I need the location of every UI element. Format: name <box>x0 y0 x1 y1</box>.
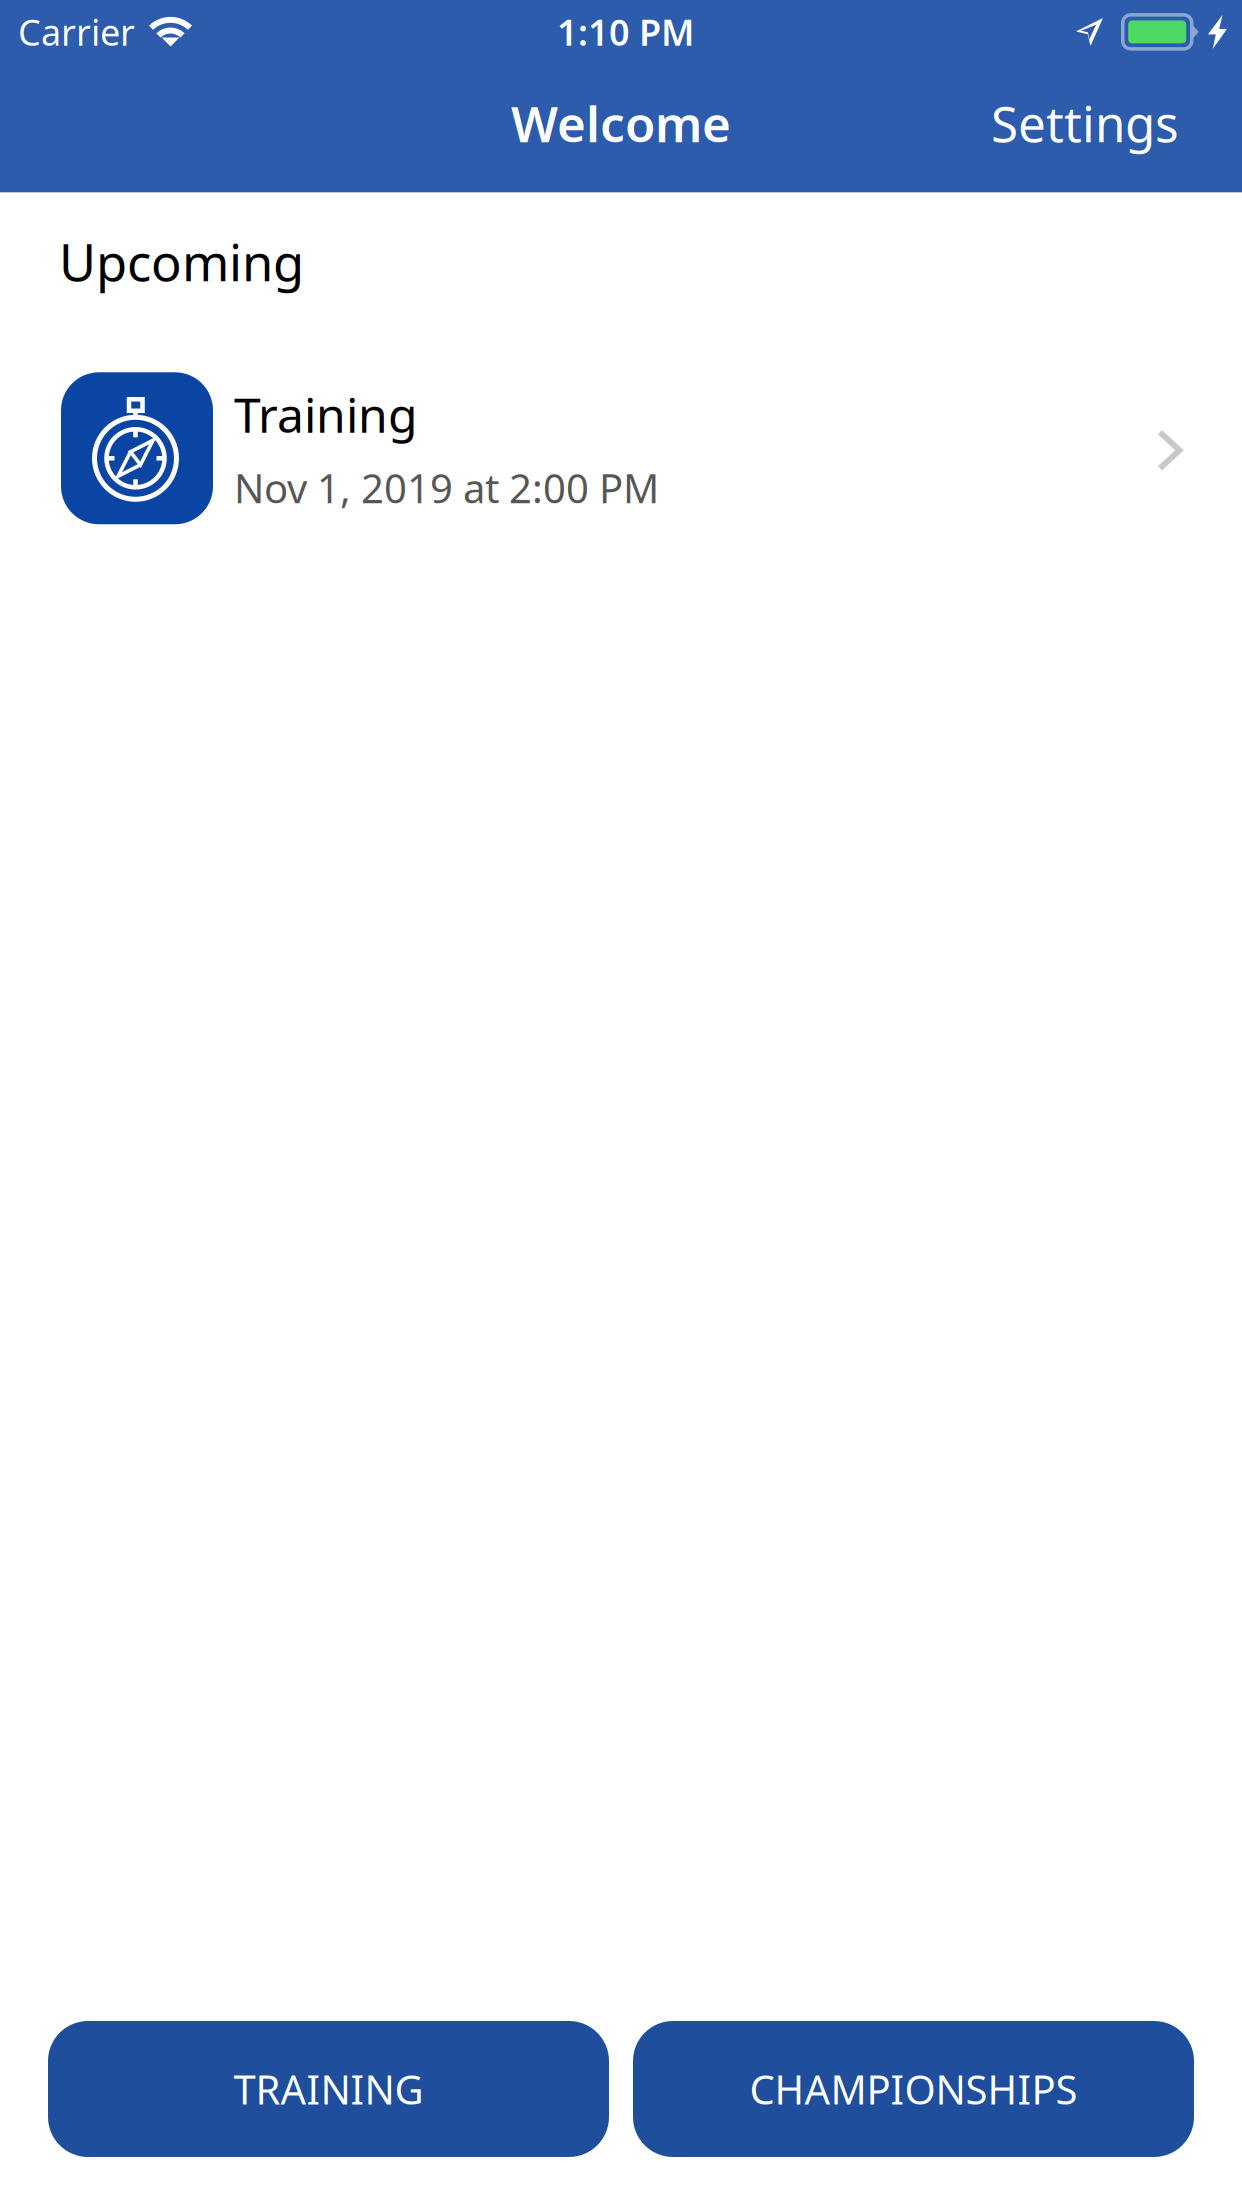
staticText: Training <box>234 382 418 446</box>
staticText: CHAMPIONSHIPS <box>749 2062 1077 2115</box>
staticText: TRAINING <box>233 2062 423 2115</box>
button[interactable]: CHAMPIONSHIPS <box>633 2021 1194 2157</box>
staticText: Settings <box>991 90 1179 156</box>
staticText: Welcome <box>511 90 731 156</box>
staticText: Upcoming <box>59 228 304 295</box>
staticText: Carrier <box>18 8 135 56</box>
button[interactable]: Settings <box>977 74 1193 172</box>
staticText: Nov 1, 2019 at 2:00 PM <box>234 461 659 514</box>
staticText: 1:10 PM <box>557 8 694 56</box>
button[interactable]: TRAINING <box>48 2021 609 2157</box>
button[interactable]: Training <box>0 360 1242 536</box>
